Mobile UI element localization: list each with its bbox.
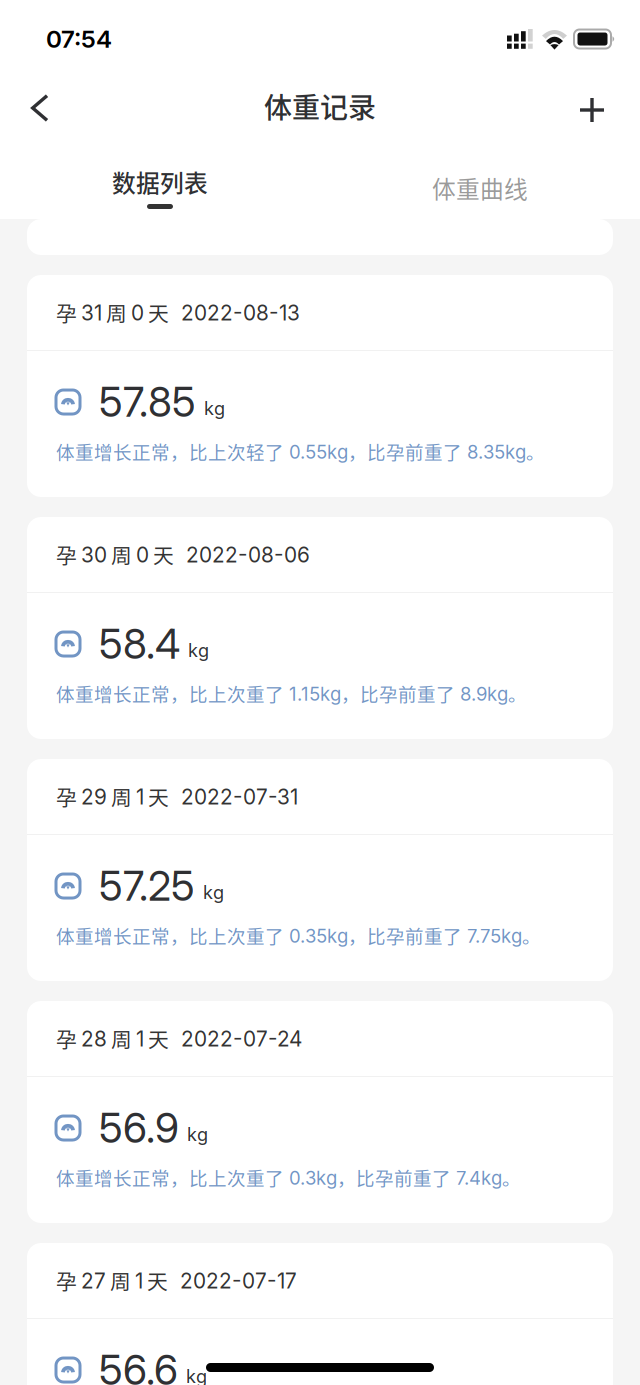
staticText: 58.4 — [99, 619, 180, 669]
staticText: kg — [186, 1365, 207, 1385]
staticText: 体重曲线 — [432, 171, 528, 205]
staticText: 数据列表 — [112, 165, 208, 199]
staticText: 孕 30 周 0 天 2022-08-06 — [56, 539, 310, 569]
staticText: 56.6 — [99, 1345, 178, 1385]
button[interactable]: 体重曲线 — [320, 142, 640, 219]
staticText: 孕 31 周 0 天 2022-08-13 — [56, 297, 300, 327]
staticText: 57.85 — [99, 377, 196, 427]
button[interactable]: Add record — [562, 79, 622, 141]
staticText: kg — [187, 1123, 208, 1145]
staticText: 孕 28 周 1 天 2022-07-24 — [56, 1023, 302, 1053]
staticText: 体重增长正常，比上次重了 0.35kg，比孕前重了 7.75kg。 — [56, 922, 541, 949]
staticText: 体重增长正常，比上次重了 0.3kg，比孕前重了 7.4kg。 — [56, 1164, 521, 1191]
staticText: kg — [204, 397, 225, 419]
button[interactable]: 数据列表 — [0, 142, 320, 219]
staticText: 体重记录 — [264, 86, 376, 126]
staticText: 体重增长正常，比上次轻了 0.55kg，比孕前重了 8.35kg。 — [56, 438, 545, 465]
staticText: 56.9 — [99, 1103, 179, 1153]
staticText: kg — [188, 639, 209, 661]
staticText: 57.25 — [99, 861, 195, 911]
staticText: 孕 29 周 1 天 2022-07-31 — [56, 781, 298, 811]
staticText: 体重增长正常，比上次重了 1.15kg，比孕前重了 8.9kg。 — [56, 680, 527, 707]
staticText: 07:54 — [46, 24, 112, 54]
button[interactable]: Back — [9, 79, 71, 141]
staticText: 孕 27 周 1 天 2022-07-17 — [56, 1265, 297, 1295]
staticText: kg — [203, 881, 224, 903]
